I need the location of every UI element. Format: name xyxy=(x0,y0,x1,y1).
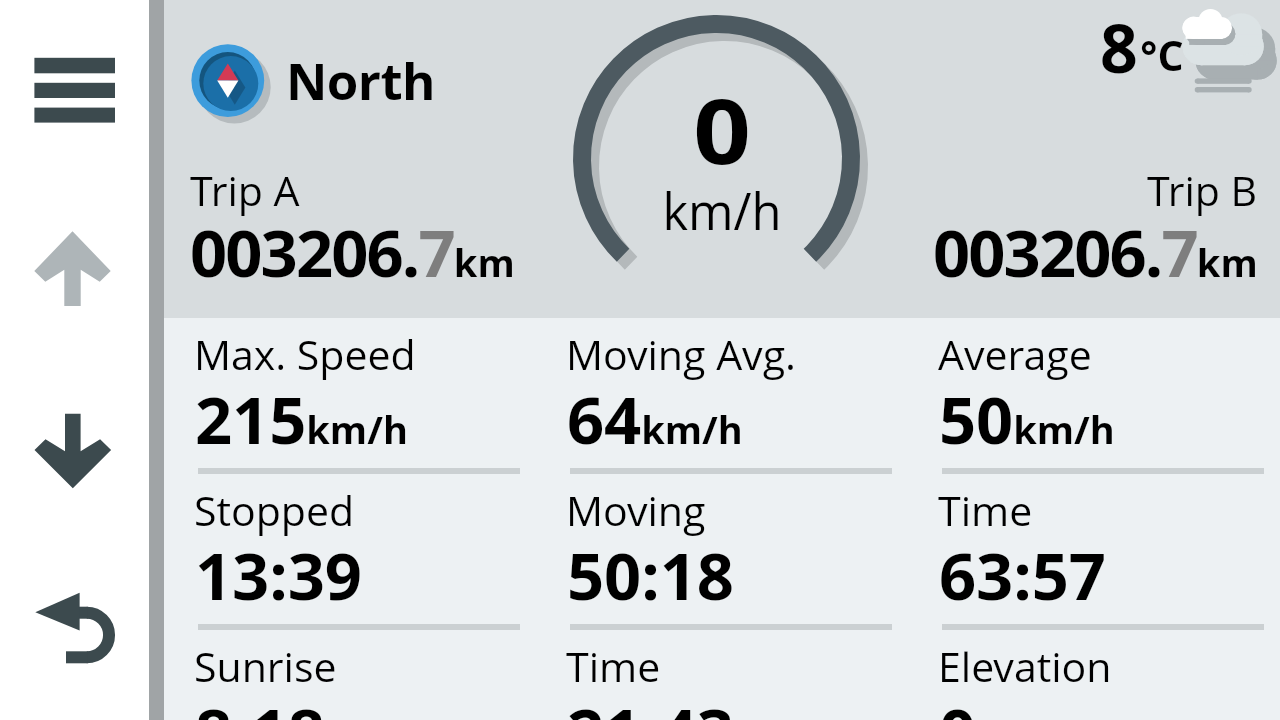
staticText: Trip B xyxy=(1147,162,1258,218)
staticText: 50:18 xyxy=(567,531,734,620)
staticText: Max. Speed xyxy=(194,326,416,382)
staticText: Time xyxy=(566,638,661,694)
staticText: 21:43 xyxy=(567,687,734,720)
staticText: 215km/h xyxy=(195,375,408,464)
button[interactable]: Compass xyxy=(186,38,278,130)
button[interactable]: Moving xyxy=(536,474,908,630)
staticText: 50km/h xyxy=(939,375,1115,464)
button[interactable]: Weather xyxy=(1089,0,1280,110)
button[interactable]: Trip B xyxy=(856,150,1258,290)
staticText: 0 xyxy=(554,68,890,191)
button[interactable]: Max. Speed xyxy=(164,318,536,474)
staticText: km/h xyxy=(581,174,863,245)
button[interactable]: Elevation xyxy=(908,630,1280,720)
staticText: 13:39 xyxy=(195,531,362,620)
button[interactable]: 0 xyxy=(572,68,872,248)
staticText: Elevation xyxy=(938,638,1112,694)
staticText: 63:57 xyxy=(939,531,1106,620)
staticText: Sunrise xyxy=(194,638,337,694)
staticText: 003206.7km xyxy=(190,208,515,297)
staticText: Moving Avg. xyxy=(566,326,797,382)
staticText: North xyxy=(286,45,435,114)
button[interactable]: Time xyxy=(908,474,1280,630)
button[interactable]: Moving Avg. xyxy=(536,318,908,474)
button[interactable]: Trip A xyxy=(190,150,590,290)
button[interactable]: Sunrise xyxy=(164,630,536,720)
staticText: 003206.7km xyxy=(933,208,1258,297)
button[interactable]: Stopped xyxy=(164,474,536,630)
button[interactable]: Back xyxy=(20,583,130,673)
staticText: 8 xyxy=(1100,2,1138,92)
staticText: Time xyxy=(938,482,1033,538)
staticText: Stopped xyxy=(194,482,355,538)
staticText: °C xyxy=(1140,27,1184,83)
staticText: Trip A xyxy=(190,162,300,218)
staticText: 8:18 xyxy=(195,687,325,720)
button[interactable]: Average xyxy=(908,318,1280,474)
staticText: 0m xyxy=(939,687,1014,720)
button[interactable]: Menu xyxy=(10,25,140,155)
button[interactable]: Time xyxy=(536,630,908,720)
staticText: Average xyxy=(938,326,1092,382)
button[interactable]: Scroll down xyxy=(20,401,130,496)
button[interactable]: Scroll up xyxy=(20,225,130,320)
staticText: 64km/h xyxy=(567,375,743,464)
staticText: Moving xyxy=(566,482,706,538)
